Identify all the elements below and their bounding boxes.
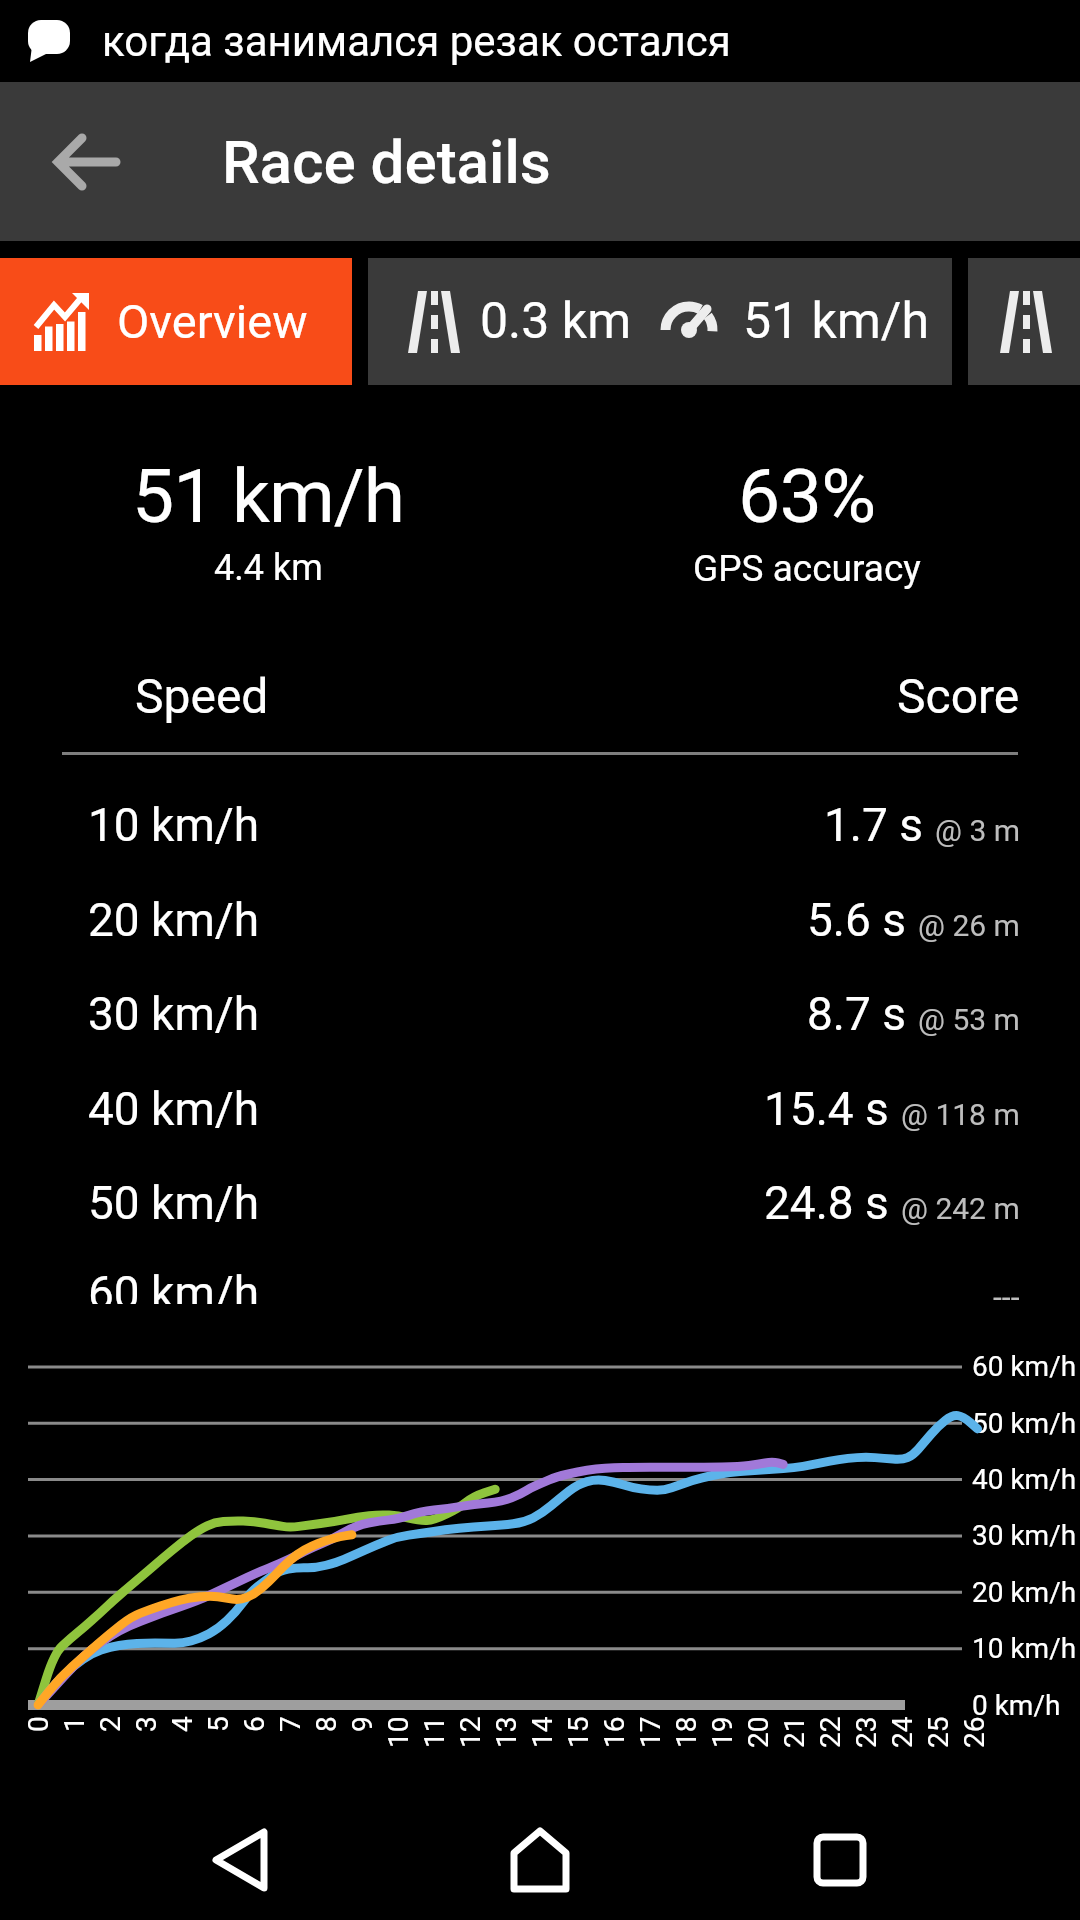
button[interactable] [54, 135, 118, 189]
staticText: Overview [117, 294, 308, 349]
staticText: когда занимался резак остался [102, 17, 731, 66]
button[interactable]: 40 km/h [88, 1082, 1020, 1136]
staticText: 4.4 km [214, 547, 323, 589]
staticText: 51 km/h [132, 452, 404, 540]
button[interactable] [390, 1800, 690, 1920]
staticText: 10 km/h [88, 798, 260, 852]
staticText: @ 26 m [918, 908, 1020, 943]
staticText: 60 km/h [88, 1266, 260, 1304]
staticText: 63% [738, 452, 876, 540]
staticText: 40 km/h [88, 1082, 260, 1136]
staticText: 20 km/h [88, 893, 260, 947]
staticText: --- [993, 1278, 1020, 1304]
button[interactable]: Overview [0, 258, 352, 385]
staticText: 5.6 s [807, 893, 906, 947]
staticText: GPS accuracy [693, 547, 921, 590]
button[interactable] [690, 1800, 990, 1920]
button[interactable]: 10 km/h [88, 798, 1020, 852]
staticText: 8.7 s [807, 987, 906, 1041]
staticText: 1.7 s [824, 798, 923, 852]
button[interactable]: 0.3 km [368, 258, 952, 385]
staticText: @ 242 m [901, 1191, 1020, 1226]
staticText: 24.8 s [764, 1176, 889, 1230]
staticText: @ 3 m [935, 813, 1020, 848]
staticText: 15.4 s [764, 1082, 889, 1136]
staticText: Speed [135, 668, 269, 724]
staticText: @ 118 m [901, 1097, 1020, 1132]
staticText: Race details [222, 127, 551, 197]
staticText: 30 km/h [88, 987, 260, 1041]
button[interactable]: 30 km/h [88, 987, 1020, 1041]
staticText: @ 53 m [918, 1002, 1020, 1037]
button[interactable]: 50 km/h [88, 1176, 1020, 1230]
staticText: 0.3 km [480, 292, 631, 351]
staticText: 51 km/h [743, 292, 929, 351]
staticText: 50 km/h [88, 1176, 260, 1230]
staticText: Score [897, 668, 1020, 724]
button[interactable]: 20 km/h [88, 893, 1020, 947]
button[interactable] [968, 258, 1080, 385]
button[interactable] [90, 1800, 390, 1920]
